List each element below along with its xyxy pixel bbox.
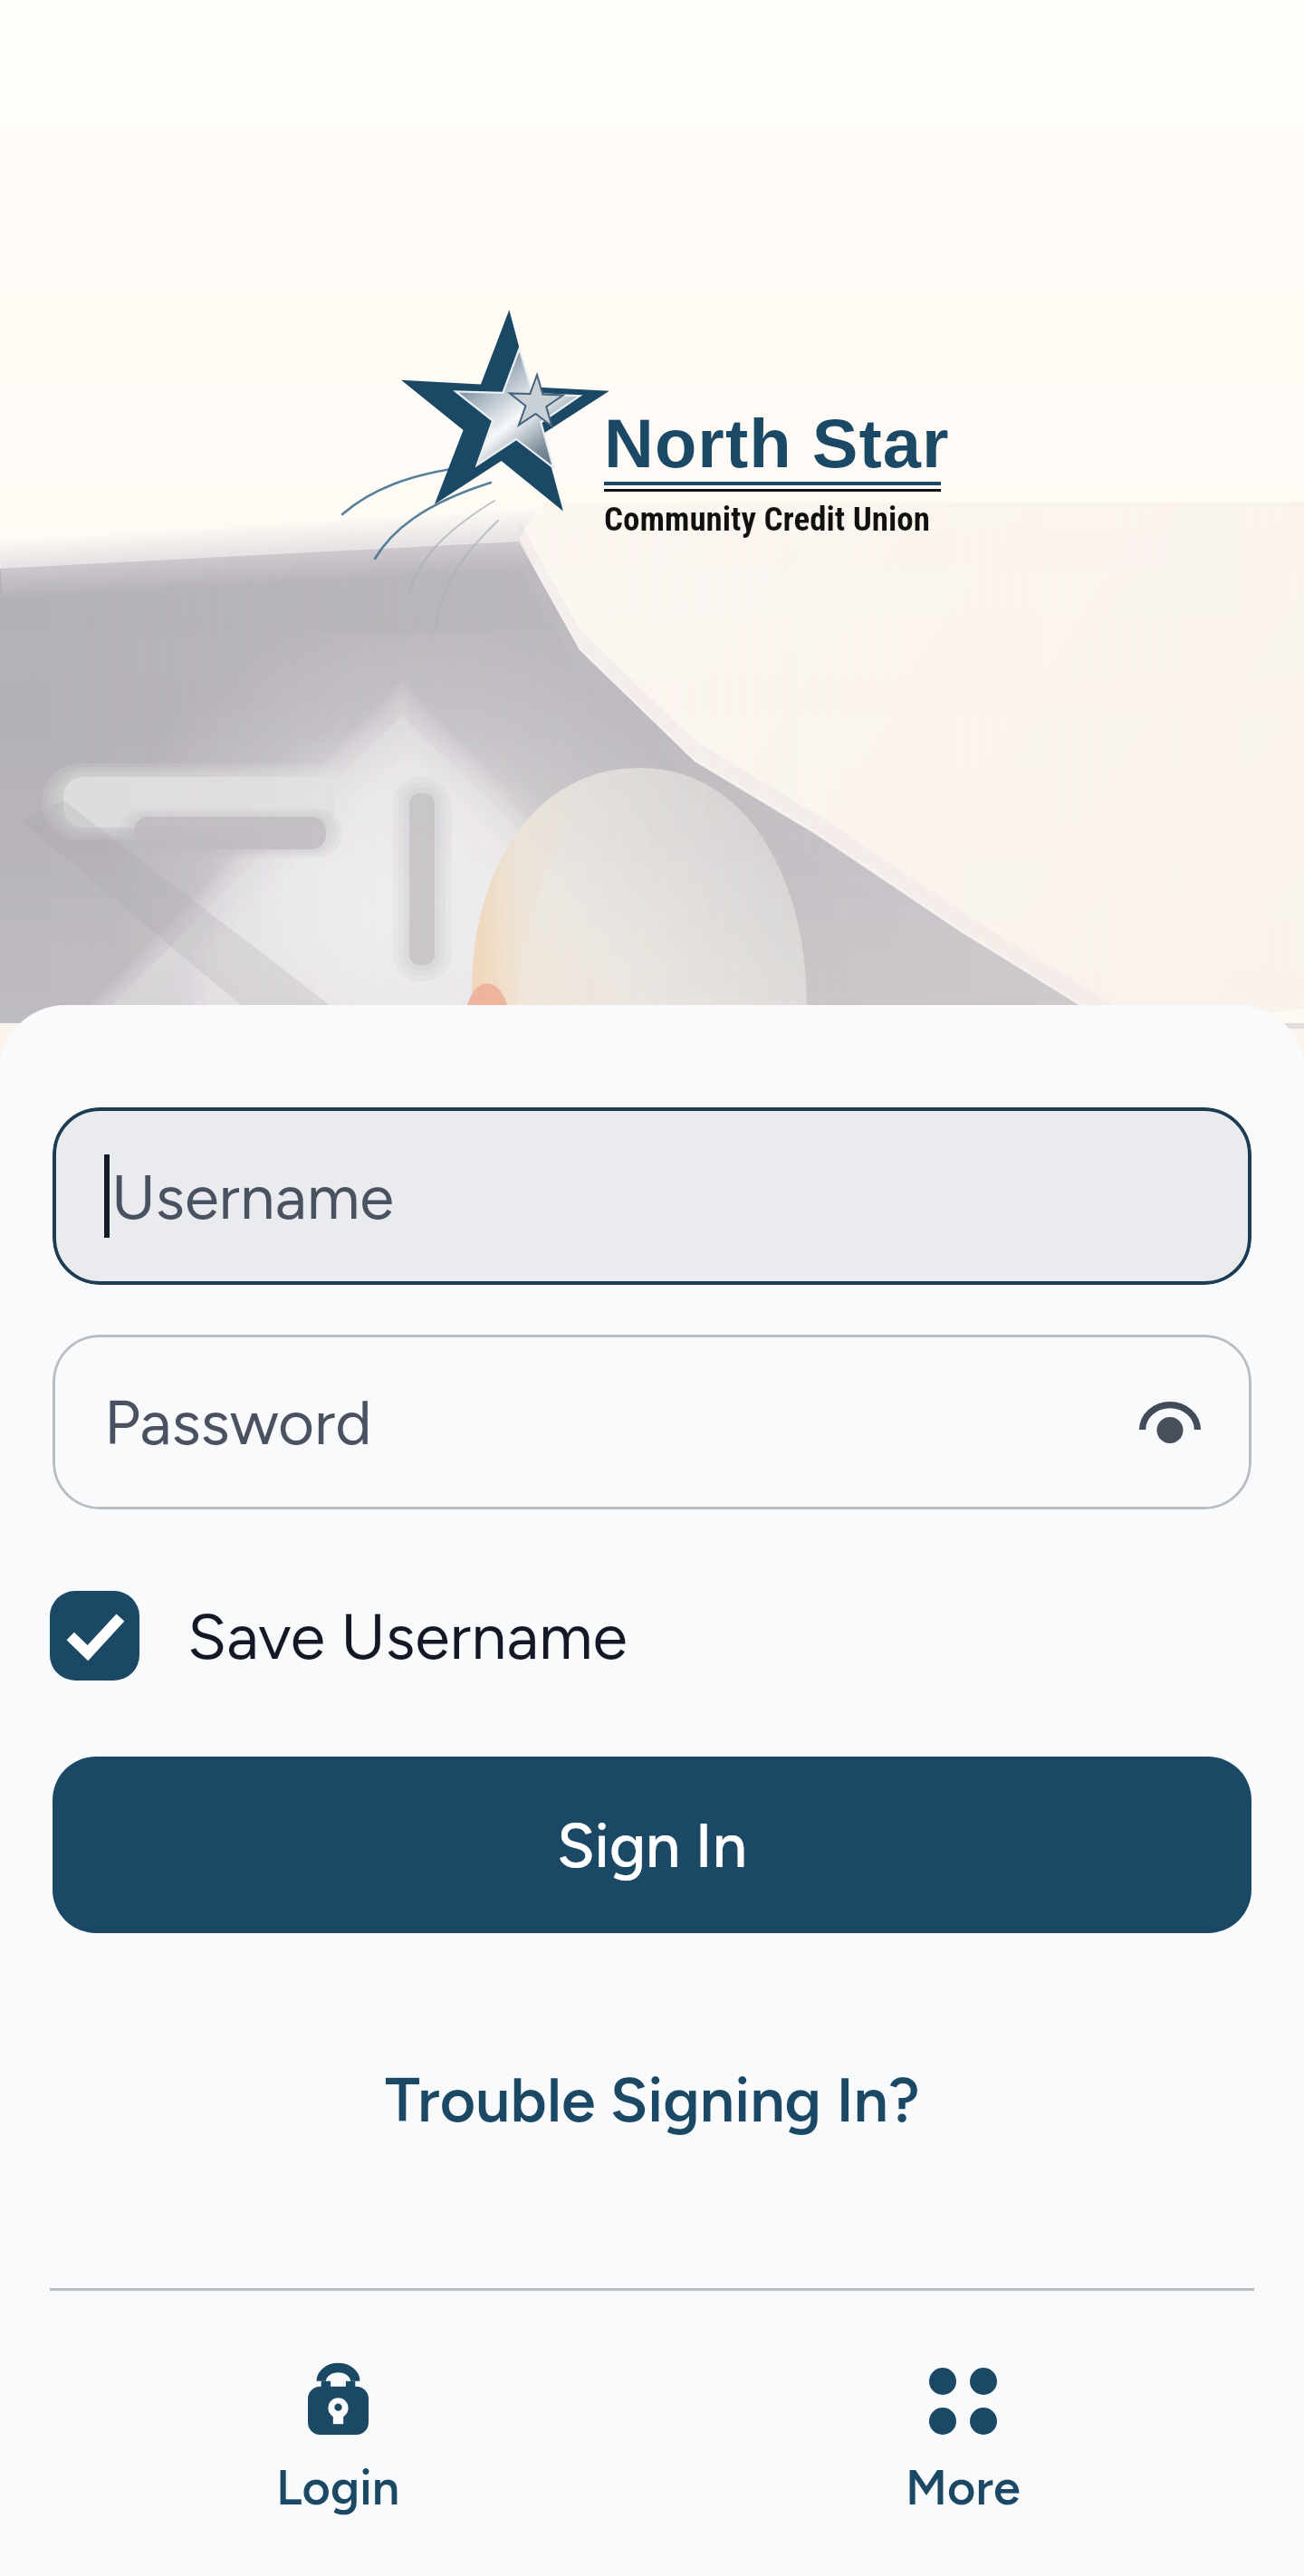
staticText: Password <box>104 1384 372 1460</box>
staticText: Login <box>276 2458 400 2517</box>
staticText: More <box>906 2458 1021 2517</box>
button[interactable]: Password <box>53 1335 1251 1509</box>
button[interactable]: More <box>827 2291 1098 2576</box>
staticText: Save Username <box>187 1598 628 1674</box>
button[interactable]: Username <box>53 1107 1251 1285</box>
button[interactable]: Login <box>202 2291 474 2576</box>
staticText: Sign In <box>557 1808 747 1882</box>
staticText: Trouble Signing In? <box>385 2063 920 2137</box>
button[interactable]: Save Username <box>50 1591 628 1681</box>
button[interactable]: Sign In <box>53 1757 1251 1933</box>
button[interactable]: Trouble Signing In? <box>0 2063 1304 2137</box>
staticText: Community Credit Union <box>604 500 930 539</box>
button[interactable]: Show password <box>1125 1377 1215 1468</box>
staticText: Username <box>111 1159 395 1234</box>
staticText: North Star <box>604 405 950 482</box>
